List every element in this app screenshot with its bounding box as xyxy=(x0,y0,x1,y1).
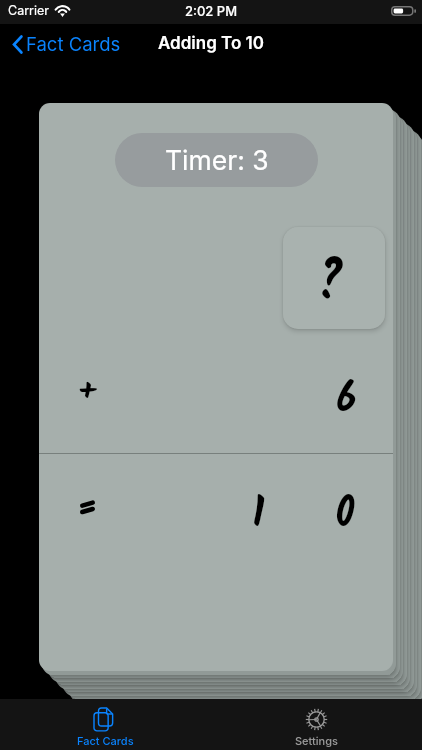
staticText: 6 xyxy=(337,367,357,435)
button[interactable]: Fact Cards xyxy=(0,699,211,750)
button[interactable]: Fact Cards xyxy=(9,29,124,59)
staticText: ? xyxy=(313,244,345,327)
button[interactable]: ? xyxy=(283,227,385,329)
staticText: Adding To 10 xyxy=(158,33,265,54)
staticText: 2:02 PM xyxy=(185,3,238,19)
staticText: Fact Cards xyxy=(26,33,121,55)
staticText: Carrier xyxy=(8,3,49,18)
staticText: + xyxy=(78,368,96,416)
staticText: 0 xyxy=(336,482,354,550)
staticText: Timer: 3 xyxy=(165,144,269,176)
staticText: Fact Cards xyxy=(77,734,134,747)
button[interactable]: Timer: 3 xyxy=(39,103,393,671)
staticText: Settings xyxy=(295,734,338,747)
staticText: 1 xyxy=(252,482,265,550)
button[interactable]: Timer: 3 xyxy=(115,133,318,187)
button[interactable]: Settings xyxy=(211,699,422,750)
